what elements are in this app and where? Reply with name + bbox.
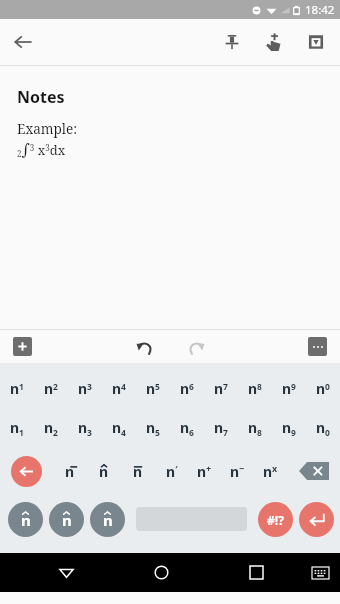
button[interactable]: n bbox=[53, 448, 87, 494]
button[interactable]: n9 bbox=[272, 408, 306, 448]
button[interactable]: Pin note bbox=[211, 21, 253, 63]
staticText: 18:42 bbox=[305, 2, 335, 18]
staticText: n8 bbox=[248, 418, 262, 438]
staticText: n5 bbox=[146, 418, 160, 438]
staticText: n bbox=[133, 462, 143, 481]
staticText: n3 bbox=[78, 379, 92, 398]
button[interactable]: Change keyboard bbox=[303, 556, 337, 590]
button[interactable]: n7 bbox=[204, 368, 238, 408]
button[interactable]: n1 bbox=[0, 368, 34, 408]
staticText: n7 bbox=[214, 379, 228, 398]
staticText: n bbox=[103, 510, 113, 530]
staticText: n1 bbox=[10, 418, 24, 438]
button[interactable]: n6 bbox=[170, 408, 204, 448]
button[interactable]: n bbox=[46, 494, 87, 544]
staticText: Notes bbox=[17, 86, 65, 108]
staticText: n6 bbox=[180, 379, 194, 398]
staticText: n′ bbox=[166, 462, 178, 481]
button[interactable]: n bbox=[87, 448, 121, 494]
staticText: n+ bbox=[197, 462, 212, 481]
button[interactable]: n9 bbox=[272, 368, 306, 408]
button[interactable]: n+ bbox=[188, 448, 221, 494]
button[interactable]: n′ bbox=[155, 448, 188, 494]
button[interactable]: Save note bbox=[295, 21, 337, 63]
staticText: 2∫3 x3dx bbox=[17, 140, 66, 160]
staticText: n9 bbox=[282, 379, 296, 398]
button[interactable]: n bbox=[87, 494, 128, 544]
staticText: n bbox=[21, 510, 31, 530]
staticText: n4 bbox=[112, 379, 126, 398]
staticText: n4 bbox=[112, 418, 126, 438]
button[interactable]: n8 bbox=[238, 408, 272, 448]
staticText: n bbox=[62, 510, 72, 530]
button[interactable]: n5 bbox=[136, 368, 170, 408]
staticText: n bbox=[99, 462, 109, 481]
button[interactable]: Home bbox=[141, 553, 181, 592]
button[interactable]: Space bbox=[136, 494, 247, 544]
button[interactable]: Enter bbox=[296, 494, 337, 544]
staticText: n bbox=[65, 462, 75, 481]
staticText: n3 bbox=[78, 418, 92, 438]
staticText: n8 bbox=[248, 379, 262, 398]
button[interactable]: n bbox=[121, 448, 155, 494]
staticText: n2 bbox=[44, 379, 58, 398]
staticText: n0 bbox=[316, 379, 330, 398]
button[interactable]: n3 bbox=[68, 408, 102, 448]
button[interactable]: #!? bbox=[255, 494, 296, 544]
button[interactable]: Recent apps bbox=[236, 553, 276, 592]
staticText: n0 bbox=[316, 418, 330, 438]
button[interactable]: n2 bbox=[34, 368, 68, 408]
staticText: n2 bbox=[44, 418, 58, 438]
button[interactable]: n0 bbox=[306, 368, 340, 408]
button[interactable]: n0 bbox=[306, 408, 340, 448]
button[interactable]: n6 bbox=[170, 368, 204, 408]
staticText: n5 bbox=[146, 379, 160, 398]
button[interactable]: n3 bbox=[68, 368, 102, 408]
staticText: #!? bbox=[267, 512, 284, 528]
staticText: Example: bbox=[17, 120, 78, 138]
staticText: n1 bbox=[10, 379, 24, 398]
button[interactable]: n− bbox=[221, 448, 254, 494]
button[interactable]: n8 bbox=[238, 368, 272, 408]
button[interactable]: nx bbox=[254, 448, 287, 494]
button[interactable]: n2 bbox=[34, 408, 68, 448]
staticText: nx bbox=[263, 462, 278, 481]
button[interactable]: n4 bbox=[102, 368, 136, 408]
staticText: n7 bbox=[214, 418, 228, 438]
button[interactable]: Backspace bbox=[287, 448, 340, 494]
button[interactable]: Back bbox=[0, 19, 46, 65]
button[interactable]: More options bbox=[308, 337, 327, 356]
button[interactable]: n bbox=[5, 494, 46, 544]
button[interactable]: Back bbox=[46, 553, 86, 592]
staticText: n6 bbox=[180, 418, 194, 438]
button[interactable]: n5 bbox=[136, 408, 170, 448]
button[interactable]: Undo bbox=[128, 331, 160, 363]
button[interactable]: Handwriting input bbox=[253, 21, 295, 63]
button[interactable]: n7 bbox=[204, 408, 238, 448]
button[interactable]: n1 bbox=[0, 408, 34, 448]
button[interactable]: n4 bbox=[102, 408, 136, 448]
staticText: n− bbox=[230, 462, 245, 481]
button[interactable]: Redo bbox=[180, 331, 212, 363]
button[interactable]: Insert bbox=[13, 337, 32, 356]
staticText: n9 bbox=[282, 418, 296, 438]
button[interactable]: Previous field bbox=[0, 448, 53, 494]
